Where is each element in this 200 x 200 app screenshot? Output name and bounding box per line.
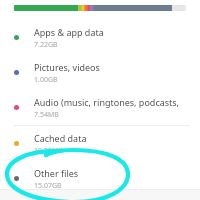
button[interactable]: Apps & app data [0,20,200,55]
button[interactable]: Pictures, videos [0,55,200,90]
staticText: Cached data [34,132,87,144]
button[interactable]: Storage usage bar [14,5,186,11]
button[interactable]: Audio (music, ringtones, podcasts, etc.) [0,90,200,125]
staticText: Apps & app data [34,26,104,38]
staticText: 7.22GB [34,40,58,50]
button[interactable]: Cached data [0,126,200,161]
staticText: 19.29MB [34,146,63,156]
staticText: Other files [34,167,79,179]
staticText: 15.07GB [34,181,62,191]
staticText: 7.54MB [34,110,59,120]
staticText: Audio (music, ringtones, podcasts, etc.) [34,96,192,108]
staticText: Pictures, videos [34,61,100,73]
button[interactable]: Other files [0,161,200,196]
staticText: 1.00GB [34,75,58,85]
